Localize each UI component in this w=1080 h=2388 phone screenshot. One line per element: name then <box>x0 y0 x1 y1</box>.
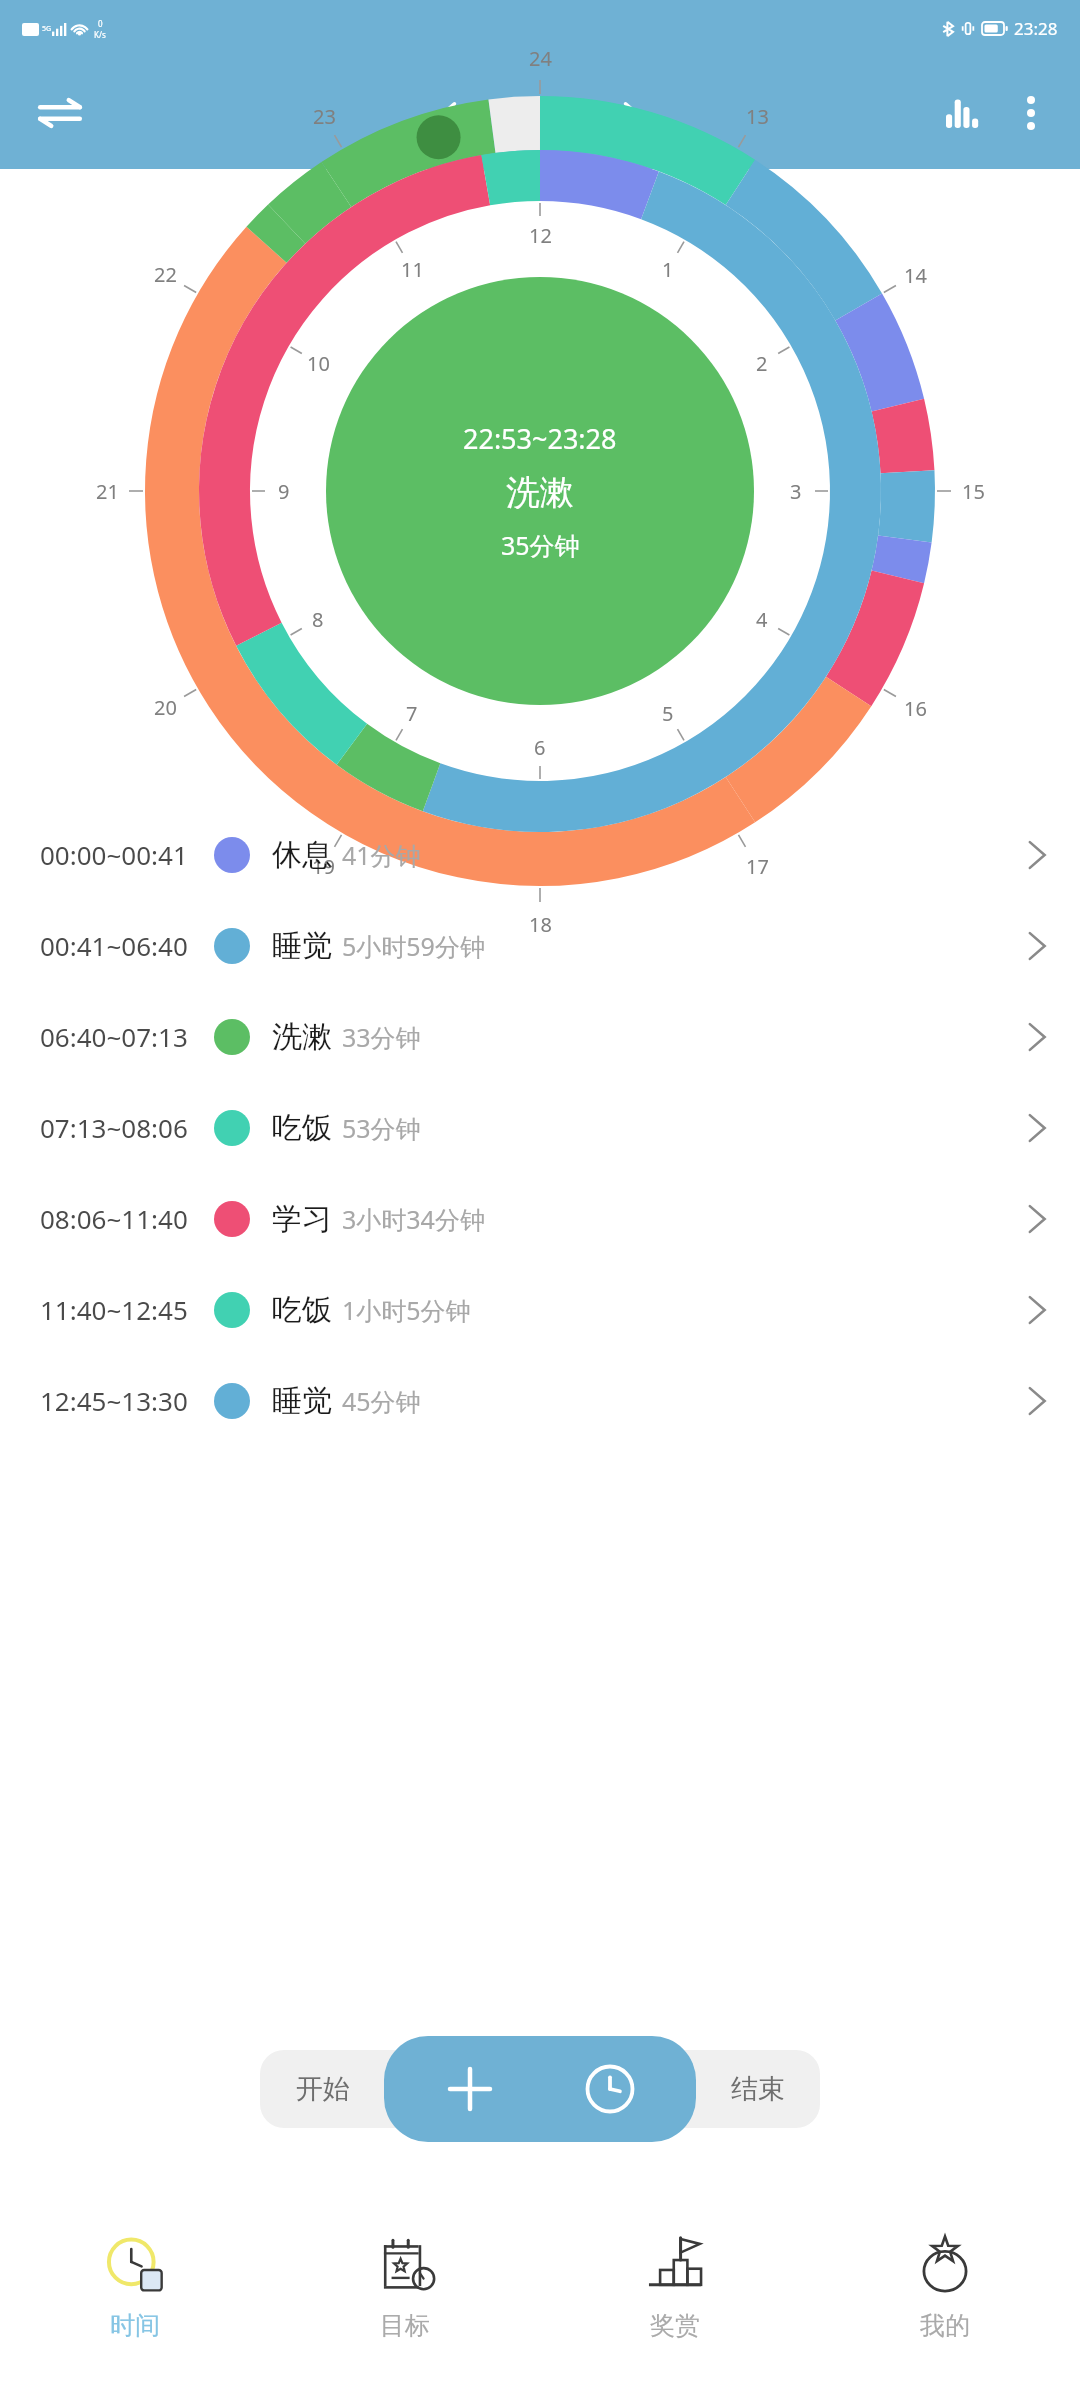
staticText: 00:00~00:41 <box>40 837 188 872</box>
staticText: 33分钟 <box>342 1020 421 1054</box>
staticText: 15 <box>962 478 985 505</box>
staticText: 洗漱 <box>272 1018 332 1056</box>
staticText: 18 <box>529 911 552 938</box>
button[interactable]: 今天 <box>503 94 577 133</box>
button[interactable]: Next day <box>603 85 659 141</box>
staticText: 53分钟 <box>342 1111 421 1145</box>
staticText: 结束 <box>731 2072 785 2106</box>
staticText: 我的 <box>920 2310 970 2341</box>
staticText: K/s <box>94 29 106 40</box>
staticText: 0 <box>98 18 103 29</box>
staticText: 4 <box>756 606 768 633</box>
button[interactable]: 开始 <box>260 2050 385 2128</box>
staticText: 19 <box>312 853 335 880</box>
staticText: 06:40~07:13 <box>40 1019 188 1054</box>
staticText: 41分钟 <box>342 838 421 872</box>
button[interactable]: 06:40~07:13 <box>0 991 1080 1082</box>
button[interactable]: 奖赏 <box>540 2200 810 2388</box>
staticText: 13 <box>746 103 769 130</box>
button[interactable]: 07:13~08:06 <box>0 1082 1080 1173</box>
staticText: 17 <box>746 853 769 880</box>
staticText: 5 <box>662 700 674 727</box>
button[interactable]: 11:40~12:45 <box>0 1264 1080 1355</box>
staticText: 睡觉 <box>272 1382 332 1420</box>
staticText: 21 <box>96 478 119 505</box>
button[interactable]: Timer <box>557 2036 663 2142</box>
staticText: 目标 <box>380 2310 430 2341</box>
staticText: 45分钟 <box>342 1384 421 1418</box>
staticText: 时间 <box>110 2310 160 2341</box>
staticText: 3 <box>790 478 802 505</box>
staticText: 今天 <box>509 94 571 133</box>
staticText: 睡觉 <box>272 927 332 965</box>
staticText: 00:41~06:40 <box>40 928 188 963</box>
button[interactable]: Add record <box>417 2036 523 2142</box>
staticText: 9 <box>278 478 290 505</box>
staticText: 5小时59分钟 <box>342 929 485 963</box>
staticText: 吃饭 <box>272 1291 332 1329</box>
staticText: 16 <box>904 695 927 722</box>
staticText: 11 <box>401 256 424 283</box>
staticText: 开始 <box>296 2072 350 2106</box>
staticText: 12:45~13:30 <box>40 1383 188 1418</box>
staticText: 11:40~12:45 <box>40 1292 188 1327</box>
staticText: 2 <box>756 350 768 377</box>
button[interactable]: 时间 <box>0 2200 270 2388</box>
staticText: 吃饭 <box>272 1109 332 1147</box>
button[interactable]: 我的 <box>810 2200 1080 2388</box>
staticText: 23 <box>313 103 336 130</box>
button[interactable]: 00:41~06:40 <box>0 900 1080 991</box>
staticText: 7 <box>406 700 418 727</box>
button[interactable]: 08:06~11:40 <box>0 1173 1080 1264</box>
staticText: 08:06~11:40 <box>40 1201 188 1236</box>
button[interactable]: Switch view <box>28 81 92 145</box>
staticText: 休息 <box>272 836 332 874</box>
button[interactable]: More options <box>1000 82 1062 144</box>
button[interactable]: 结束 <box>695 2050 820 2128</box>
staticText: 07:13~08:06 <box>40 1110 188 1145</box>
button[interactable]: Previous day <box>421 85 477 141</box>
staticText: 14 <box>904 262 927 289</box>
button[interactable]: 目标 <box>270 2200 540 2388</box>
staticText: 1 <box>662 256 674 283</box>
staticText: 8 <box>312 606 324 633</box>
button[interactable]: Statistics <box>932 82 994 144</box>
button[interactable]: 12:45~13:30 <box>0 1355 1080 1446</box>
staticText: 20 <box>154 694 177 721</box>
staticText: 3小时34分钟 <box>342 1202 485 1236</box>
staticText: 22:53~23:28 <box>463 420 617 457</box>
staticText: 学习 <box>272 1200 332 1238</box>
staticText: 洗漱 <box>506 471 574 514</box>
button[interactable]: 00:00~00:41 <box>0 809 1080 900</box>
staticText: 24 <box>529 45 552 72</box>
staticText: 6 <box>534 734 546 761</box>
staticText: 23:28 <box>1014 17 1058 40</box>
staticText: 12 <box>529 222 552 249</box>
staticText: 奖赏 <box>650 2310 700 2341</box>
staticText: 1小时5分钟 <box>342 1293 471 1327</box>
staticText: 5G <box>42 24 52 34</box>
staticText: 10 <box>307 350 330 377</box>
staticText: 22 <box>154 261 177 288</box>
staticText: 35分钟 <box>501 528 580 562</box>
